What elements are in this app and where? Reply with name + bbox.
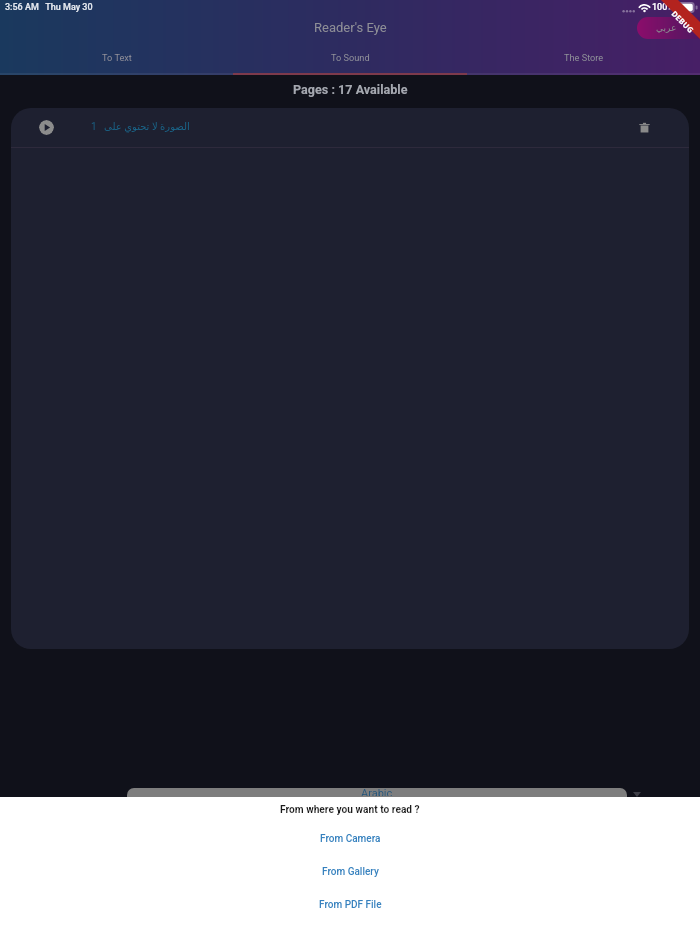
staticText: Arabic (361, 788, 393, 796)
button[interactable]: To Sound (234, 43, 467, 75)
staticText: DEBUG (670, 9, 696, 35)
button[interactable]: From Gallery (0, 855, 700, 888)
button[interactable]: Arabic (127, 788, 627, 797)
staticText: From Gallery (322, 866, 379, 878)
button[interactable]: From Camera (0, 822, 700, 855)
button[interactable]: The Store (467, 43, 700, 75)
staticText: 1 الصورة لا تحتوي على (91, 121, 190, 133)
button[interactable]: To Text (0, 43, 234, 75)
staticText: Pages : 17 Available (293, 82, 408, 97)
staticText: From PDF File (319, 899, 382, 911)
other: Expand (633, 792, 641, 797)
staticText: To Sound (331, 52, 370, 63)
staticText: Reader's Eye (314, 20, 387, 35)
button[interactable]: Play (39, 120, 54, 135)
staticText: From Camera (320, 833, 381, 845)
button[interactable]: From PDF File (0, 888, 700, 921)
staticText: From where you want to read ? (280, 804, 420, 816)
button[interactable]: Delete (638, 121, 651, 135)
staticText: 3:56 AM Thu May 30 (5, 2, 93, 13)
staticText: To Text (102, 52, 132, 63)
button[interactable]: عربي (637, 17, 700, 39)
staticText: 100% (652, 2, 674, 13)
staticText: The Store (564, 52, 604, 63)
staticText: عربي (656, 23, 677, 33)
